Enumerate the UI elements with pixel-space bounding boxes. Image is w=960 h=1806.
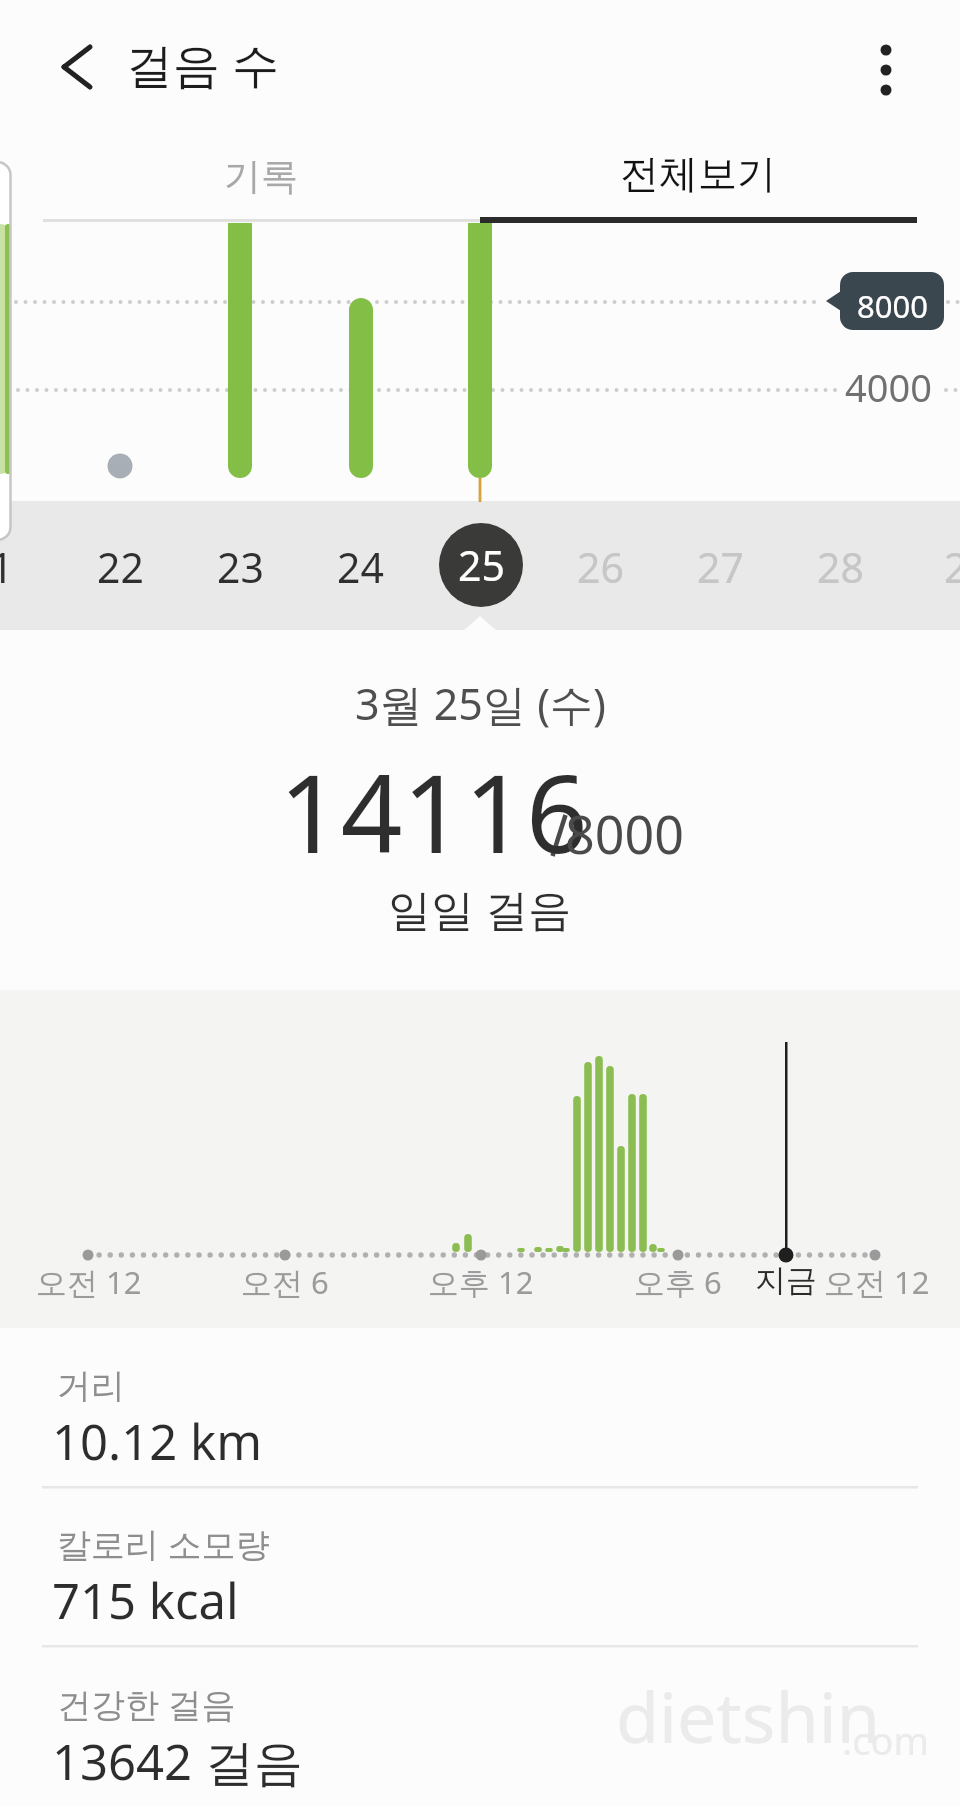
button[interactable] xyxy=(43,130,480,220)
staticText: 거리 xyxy=(57,1365,125,1408)
button[interactable] xyxy=(300,501,420,630)
staticText: 28 xyxy=(817,539,864,595)
staticText: 14116 xyxy=(279,738,588,885)
staticText: 22 xyxy=(97,539,144,595)
staticText: 10.12 km xyxy=(52,1408,262,1475)
staticText: 지금 xyxy=(755,1261,817,1300)
staticText: 전체보기 xyxy=(620,149,776,198)
staticText: 오후 6 xyxy=(634,1261,722,1303)
staticText: 715 kcal xyxy=(52,1567,239,1634)
staticText: 3월 25일 (수) xyxy=(355,674,606,733)
staticText: 24 xyxy=(337,539,384,595)
staticText: 1 xyxy=(0,539,14,595)
staticText: 칼로리 소모량 xyxy=(57,1521,270,1567)
staticText: 오후 12 xyxy=(428,1261,534,1303)
staticText: 8000 xyxy=(565,798,684,869)
staticText: 25 xyxy=(458,537,505,593)
button[interactable] xyxy=(856,25,916,109)
button[interactable]: 25 xyxy=(439,523,523,607)
staticText: 오전 12 xyxy=(36,1261,142,1303)
staticText: 13642 걸음 xyxy=(52,1728,303,1795)
staticText: 기록 xyxy=(224,153,298,200)
staticText: 4000 xyxy=(845,361,932,413)
staticText: 8000 xyxy=(857,285,928,327)
staticText: .com xyxy=(842,1714,929,1766)
button[interactable] xyxy=(480,130,917,220)
staticText: 일일 걸음 xyxy=(388,879,572,938)
staticText: 26 xyxy=(577,539,624,595)
staticText: 오전 6 xyxy=(241,1261,329,1303)
staticText: 23 xyxy=(217,539,264,595)
button[interactable] xyxy=(180,501,300,630)
staticText: 걸음 수 xyxy=(126,32,280,96)
staticText: 2 xyxy=(944,539,960,595)
staticText: 건강한 걸음 xyxy=(57,1681,236,1727)
button[interactable] xyxy=(420,501,540,630)
button[interactable] xyxy=(660,501,780,630)
button[interactable] xyxy=(40,28,112,104)
button[interactable] xyxy=(0,1488,960,1646)
button[interactable] xyxy=(540,501,660,630)
staticText: 오전 12 xyxy=(824,1261,930,1303)
button[interactable] xyxy=(0,1328,960,1487)
staticText: dietshin xyxy=(616,1668,880,1763)
button[interactable] xyxy=(0,1647,960,1806)
button[interactable] xyxy=(900,501,960,630)
button[interactable] xyxy=(60,501,180,630)
button[interactable] xyxy=(780,501,900,630)
staticText: 27 xyxy=(697,539,744,595)
